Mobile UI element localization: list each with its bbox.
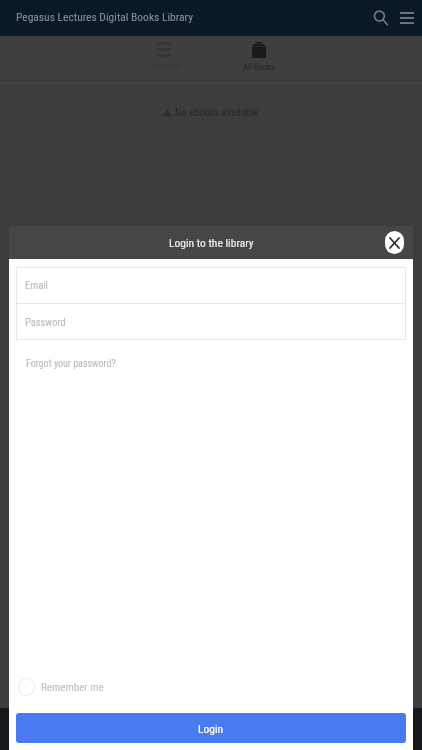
button[interactable]: Login [16, 713, 406, 743]
button[interactable]: Password [16, 304, 406, 340]
staticText: No ebooks available [175, 106, 259, 118]
staticText: Email [25, 279, 48, 291]
staticText: All Books [243, 62, 275, 72]
button[interactable]: Categories [128, 34, 198, 79]
staticText: Password [25, 316, 66, 328]
button[interactable]: Close dialog [385, 231, 404, 254]
button[interactable]: Remember me [18, 678, 413, 696]
button[interactable]: All Books [224, 34, 294, 79]
button[interactable]: Search [368, 5, 394, 31]
button[interactable]: Forgot your password? [26, 358, 116, 370]
staticText: Remember me [41, 681, 104, 694]
button[interactable]: Menu [394, 5, 420, 31]
staticText: Login to the library [169, 236, 254, 249]
staticText: Login [198, 722, 224, 735]
staticText: Pegasus Lectures Digital Books Library [16, 10, 193, 23]
button[interactable]: Email [16, 267, 406, 303]
